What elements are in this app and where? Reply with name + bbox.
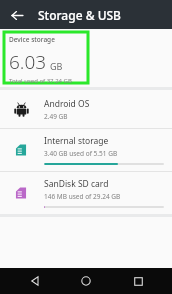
button[interactable]: Back <box>5 3 29 27</box>
button[interactable]: Recent apps <box>121 268 155 294</box>
staticText: 3.40 GB used of 5.51 GB <box>44 149 118 158</box>
staticText: Android OS <box>44 98 90 110</box>
staticText: 6.03 <box>9 49 47 75</box>
staticText: Internal storage <box>44 135 109 147</box>
button[interactable]: Back <box>18 268 52 294</box>
button[interactable]: Android OS <box>0 90 172 128</box>
staticText: 146 MB used of 29.24 GB <box>44 192 121 201</box>
staticText: GB <box>50 60 63 72</box>
staticText: Storage & USB <box>38 7 121 23</box>
staticText: 2.49 GB <box>44 112 68 121</box>
staticText: Device storage <box>9 35 55 44</box>
button[interactable]: Device storage <box>4 32 88 83</box>
staticText: Total used of 37.24 GB <box>9 77 72 83</box>
staticText: SanDisk SD card <box>44 178 109 190</box>
button[interactable]: Internal storage <box>0 129 172 171</box>
button[interactable]: SanDisk SD card <box>0 172 172 214</box>
button[interactable]: Home <box>69 268 103 294</box>
